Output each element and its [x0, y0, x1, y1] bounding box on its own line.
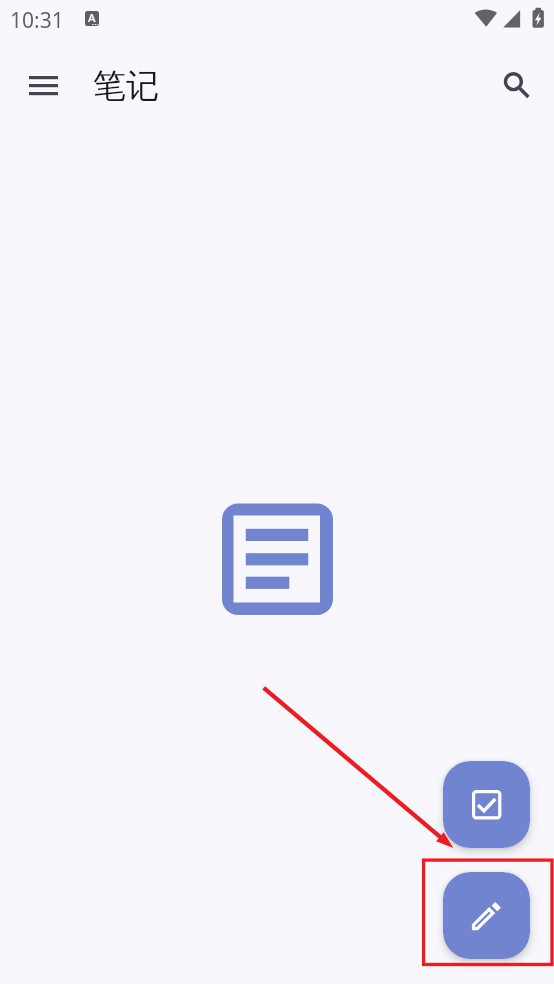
- staticText: 笔记: [93, 65, 159, 107]
- button[interactable]: Search: [490, 58, 538, 106]
- button[interactable]: New note: [443, 872, 530, 959]
- button[interactable]: Open navigation menu: [15, 62, 71, 109]
- button[interactable]: New checklist: [443, 761, 530, 848]
- staticText: 10:31: [10, 6, 64, 35]
- staticText: A: [88, 11, 96, 25]
